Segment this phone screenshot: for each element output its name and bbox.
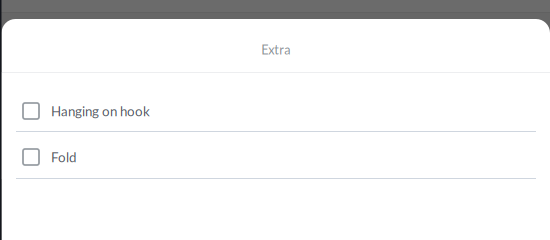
button[interactable]: Fold [1,132,550,178]
button[interactable]: Hanging on hook [1,85,550,131]
staticText: Hanging on hook [51,103,150,119]
staticText: Extra [261,42,290,57]
staticText: Fold [51,149,76,165]
